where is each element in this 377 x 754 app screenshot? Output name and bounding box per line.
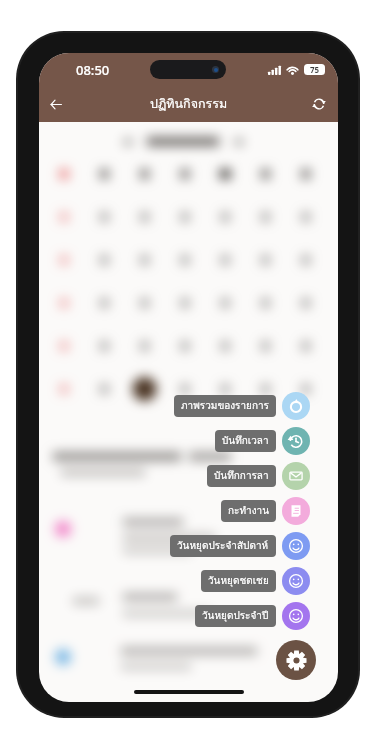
- button[interactable]: Back: [40, 88, 72, 120]
- button[interactable]: Sync: [305, 90, 333, 118]
- button[interactable]: บันทึกการลา: [207, 462, 310, 490]
- button[interactable]: วันหยุดประจำปี: [195, 602, 310, 630]
- staticText: ภาพรวมของรายการ: [181, 398, 269, 414]
- button[interactable]: Settings: [276, 640, 316, 680]
- button[interactable]: วันหยุดชดเชย: [201, 567, 310, 595]
- staticText: ปฏิทินกิจกรรม: [150, 94, 228, 114]
- staticText: วันหยุดประจำสัปดาห์: [177, 538, 269, 554]
- button[interactable]: ภาพรวมของรายการ: [174, 392, 310, 420]
- staticText: บันทึกการลา: [214, 468, 269, 484]
- staticText: กะทำงาน: [228, 503, 269, 519]
- staticText: 08:50: [76, 61, 110, 79]
- staticText: วันหยุดชดเชย: [208, 573, 269, 589]
- button[interactable]: วันหยุดประจำสัปดาห์: [170, 532, 310, 560]
- staticText: 75: [310, 64, 320, 75]
- staticText: วันหยุดประจำปี: [202, 608, 269, 624]
- staticText: บันทึกเวลา: [222, 433, 269, 449]
- button[interactable]: กะทำงาน: [221, 497, 310, 525]
- button[interactable]: บันทึกเวลา: [215, 427, 310, 455]
